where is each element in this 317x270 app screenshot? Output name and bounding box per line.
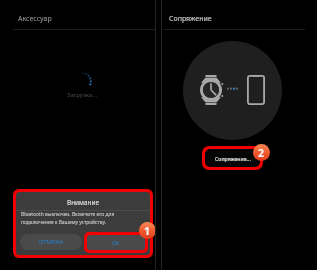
staticText: подключения к Вашему устройству. xyxy=(21,219,107,226)
staticText: 1 xyxy=(144,224,151,238)
button[interactable]: Сопряжение... xyxy=(205,149,260,167)
staticText: ОТМЕНА xyxy=(39,238,64,246)
staticText: Bluetooth выключен. Включите его для xyxy=(21,211,115,218)
staticText: Загрузка... xyxy=(62,91,102,99)
staticText: Сопряжение xyxy=(169,14,212,24)
staticText: Внимание xyxy=(16,198,150,207)
staticText: OK xyxy=(112,239,120,246)
staticText: Сопряжение... xyxy=(215,155,251,162)
button[interactable]: OK xyxy=(87,235,145,250)
staticText: 2 xyxy=(258,146,265,160)
staticText: Аксессуар xyxy=(18,14,52,24)
button[interactable]: ОТМЕНА xyxy=(20,234,82,250)
